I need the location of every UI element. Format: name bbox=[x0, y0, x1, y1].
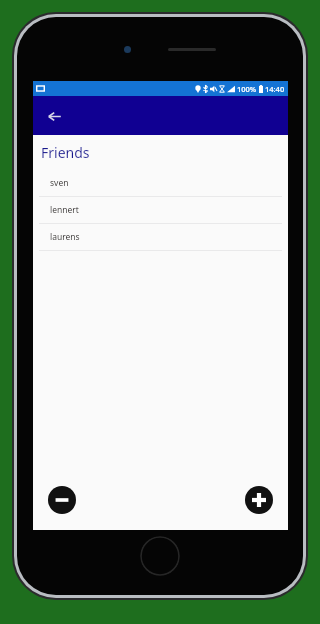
staticText: Friends bbox=[41, 143, 90, 162]
button[interactable]: Remove friend bbox=[48, 486, 76, 514]
button[interactable]: sven bbox=[33, 170, 288, 197]
button[interactable]: Add friend bbox=[245, 486, 273, 514]
staticText: laurens bbox=[50, 231, 80, 243]
button[interactable]: lennert bbox=[33, 197, 288, 224]
button[interactable]: laurens bbox=[33, 224, 288, 251]
staticText: sven bbox=[50, 177, 69, 189]
staticText: 14:40 bbox=[265, 84, 285, 94]
button[interactable]: Back bbox=[39, 101, 69, 131]
staticText: 100% bbox=[237, 84, 257, 94]
staticText: lennert bbox=[50, 204, 79, 216]
